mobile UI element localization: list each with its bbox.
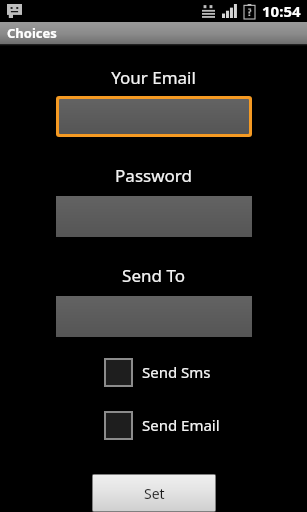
staticText: Your Email bbox=[111, 66, 196, 89]
staticText: Send To bbox=[122, 264, 185, 287]
staticText: Password bbox=[115, 164, 192, 187]
staticText: Choices bbox=[7, 24, 57, 42]
button[interactable] bbox=[56, 296, 252, 337]
staticText: 10:54 bbox=[262, 1, 301, 21]
staticText: Send Email bbox=[142, 415, 220, 435]
button[interactable] bbox=[59, 99, 249, 134]
button[interactable] bbox=[56, 196, 252, 237]
button[interactable]: Set bbox=[93, 475, 215, 511]
staticText: Set bbox=[144, 484, 165, 503]
button[interactable]: Send Email bbox=[56, 410, 252, 440]
staticText: Send Sms bbox=[142, 362, 211, 382]
button[interactable]: Send Sms bbox=[56, 357, 252, 387]
